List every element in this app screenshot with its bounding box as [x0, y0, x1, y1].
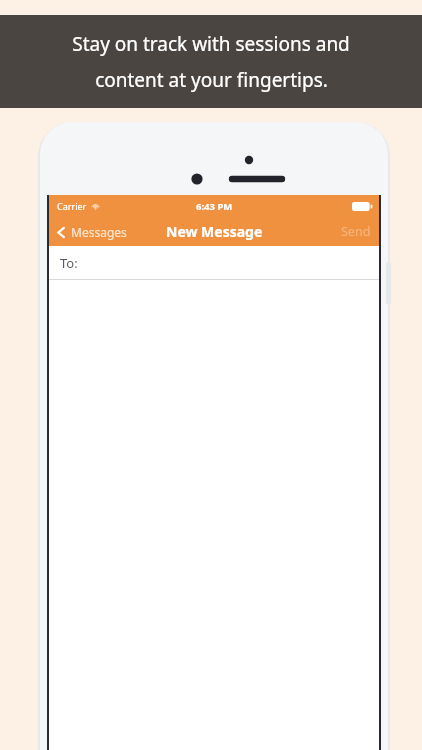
button[interactable]: Send	[333, 219, 379, 244]
staticText: Send	[341, 223, 371, 240]
staticText: Carrier	[57, 200, 87, 212]
button[interactable]: To:	[49, 246, 379, 280]
staticText: Messages	[71, 224, 127, 240]
button[interactable]: Messages	[49, 220, 135, 244]
staticText: To:	[60, 254, 78, 272]
staticText: 6:43 PM	[196, 200, 233, 213]
staticText: Stay on track with sessions and	[72, 31, 350, 57]
staticText: New Message	[166, 222, 263, 241]
staticText: content at your fingertips.	[95, 67, 328, 93]
